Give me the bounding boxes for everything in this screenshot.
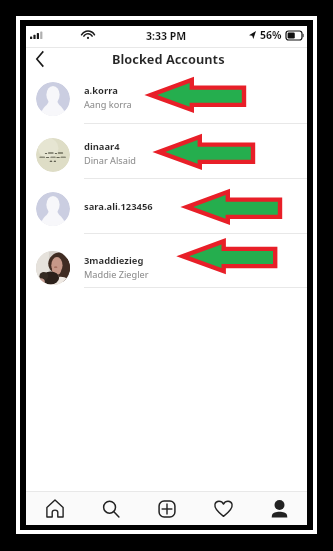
staticText: Aang korra xyxy=(84,98,132,111)
staticText: Blocked Accounts xyxy=(112,50,225,67)
staticText: 56% xyxy=(260,28,282,42)
button[interactable]: 3maddiezieg xyxy=(26,233,307,286)
staticText: sara.ali.123456 xyxy=(84,200,153,213)
staticText: 3maddiezieg xyxy=(84,254,144,267)
staticText: Dinar Alsaid xyxy=(84,154,136,167)
staticText: dinaar4 xyxy=(84,140,120,153)
button[interactable]: Search xyxy=(83,492,139,525)
button[interactable]: dinaar4 xyxy=(26,123,307,178)
staticText: Maddie Ziegler xyxy=(84,268,149,281)
button[interactable]: a.korra xyxy=(26,73,307,123)
button[interactable]: Home xyxy=(26,492,83,525)
button[interactable]: Profile xyxy=(251,492,307,525)
button[interactable]: sara.ali.123456 xyxy=(26,178,307,233)
button[interactable]: Create xyxy=(139,492,195,525)
staticText: a.korra xyxy=(84,84,118,97)
staticText: 3:33 PM xyxy=(146,29,187,43)
button[interactable]: Back xyxy=(26,45,54,73)
button[interactable]: Activity xyxy=(195,492,251,525)
